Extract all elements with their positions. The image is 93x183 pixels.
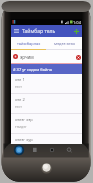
button[interactable]: хэл 2 [11, 94, 82, 114]
button[interactable]: мэдээ өгөх [46, 37, 82, 49]
staticText: хэлэг хэр [15, 117, 33, 122]
staticText: тест [15, 84, 22, 89]
button[interactable]: Delete [74, 53, 82, 61]
staticText: таймбарлах [17, 41, 41, 46]
button[interactable]: Search [58, 144, 72, 156]
staticText: эрчим [20, 54, 34, 60]
staticText: 1:04 [73, 20, 81, 25]
button[interactable]: Home [43, 144, 57, 156]
staticText: хэл 2 [15, 97, 25, 102]
button[interactable]: хэл 1 [11, 74, 82, 94]
button[interactable]: Menu [11, 25, 22, 37]
button[interactable]: эрчим [11, 50, 82, 63]
button[interactable]: Menu [28, 144, 42, 156]
staticText: тест [15, 104, 22, 109]
staticText: Таймбар тель [22, 28, 56, 35]
button[interactable]: таймбарлах [11, 37, 46, 49]
staticText: хэл 1 [15, 77, 25, 82]
staticText: тэмдэг [15, 124, 27, 129]
button[interactable]: хэлэг хэр [11, 114, 82, 134]
staticText: хэлэг хур [15, 137, 33, 142]
button[interactable]: хэлэг хур [11, 134, 82, 144]
button[interactable]: Add [71, 25, 82, 37]
staticText: мэдээ өгөх [54, 41, 75, 46]
staticText: # 37 уг содом байна [13, 67, 53, 72]
button[interactable]: Back [13, 144, 27, 156]
